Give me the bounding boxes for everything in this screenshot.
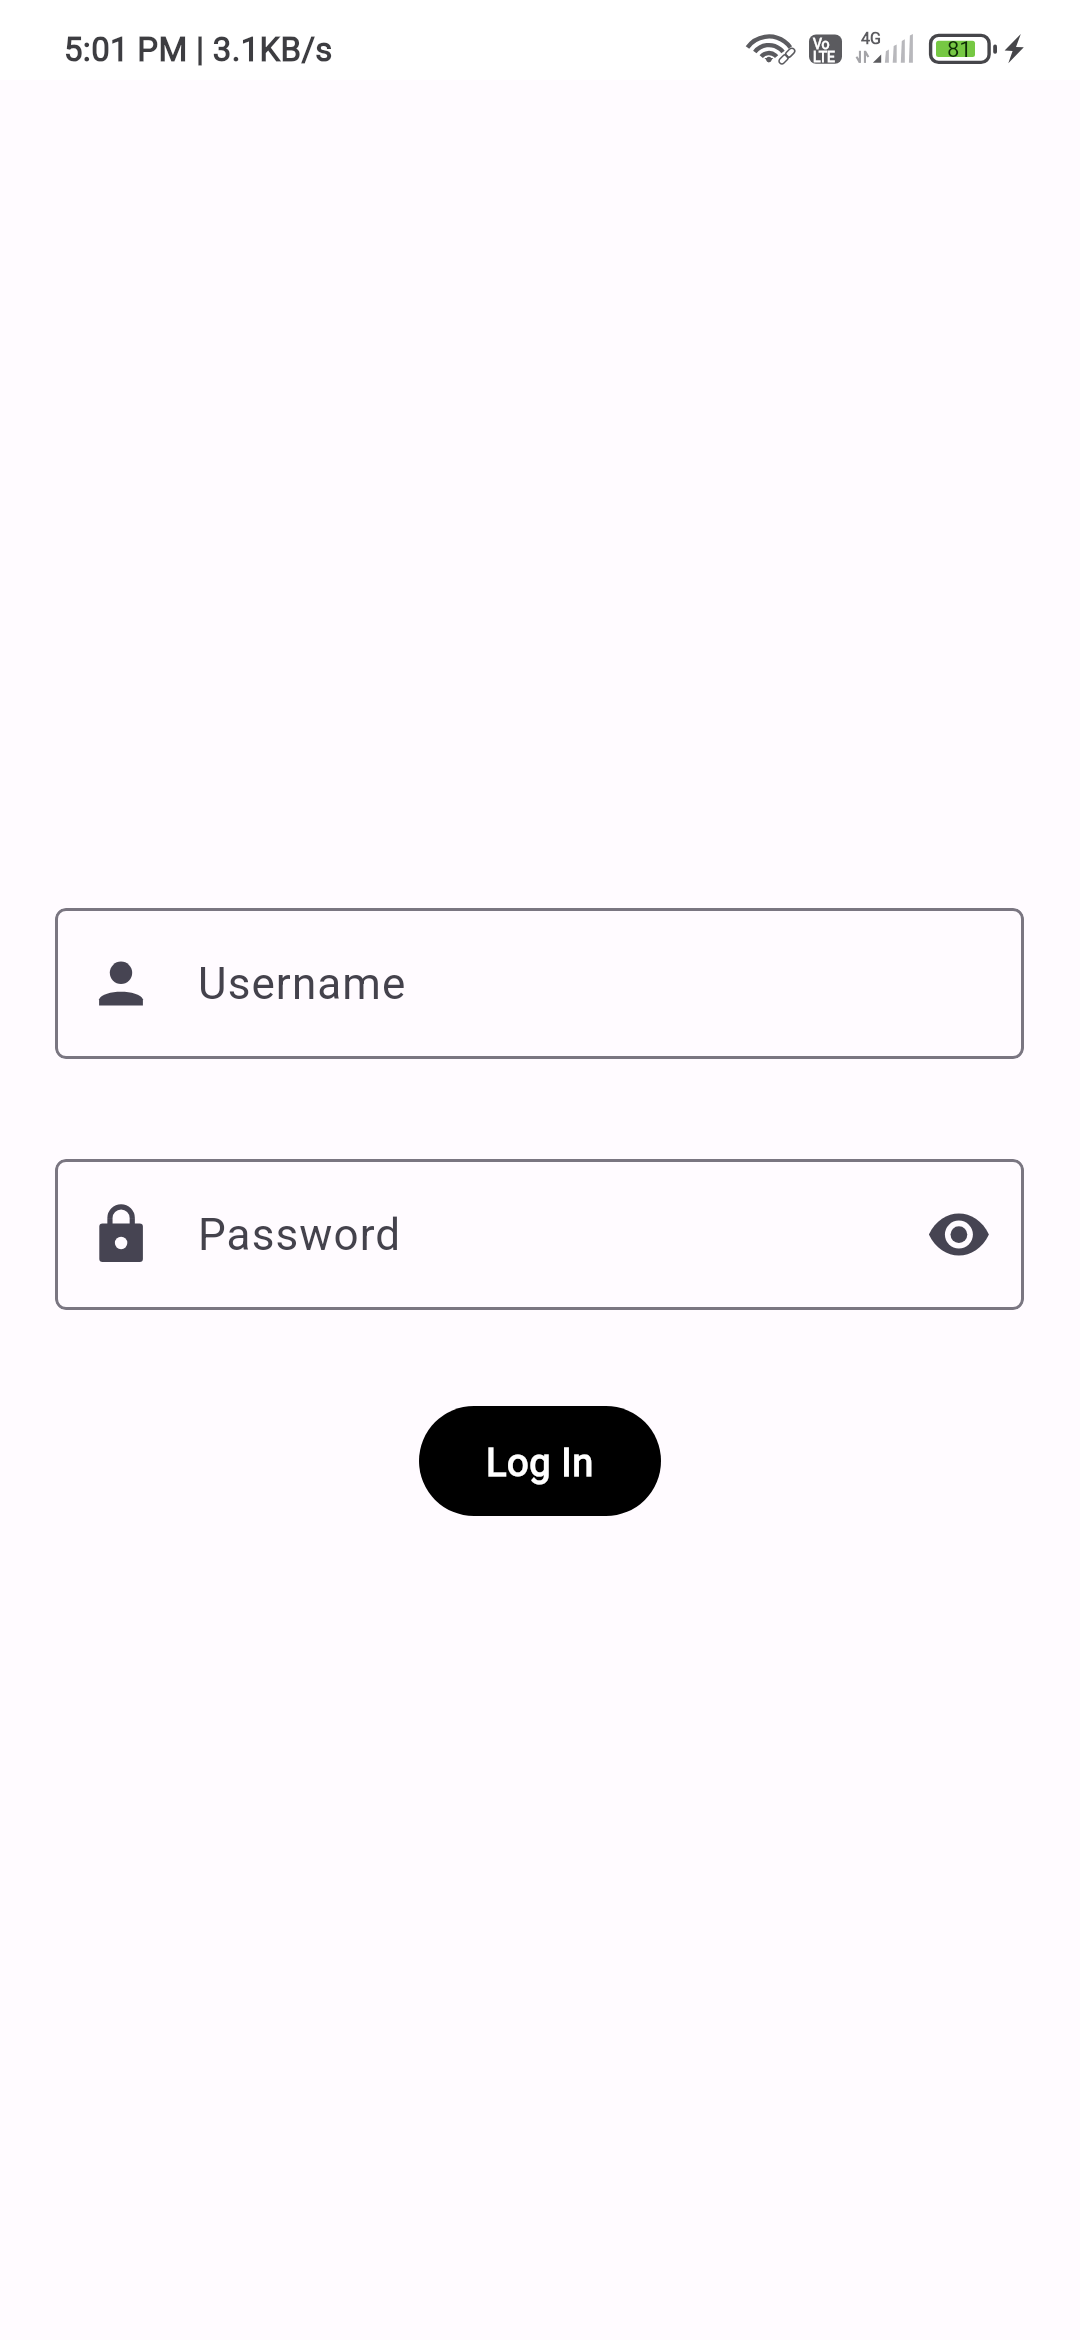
- staticText: Username: [198, 958, 407, 1010]
- button[interactable]: Show password: [924, 1200, 994, 1270]
- staticText: Log In: [486, 1441, 594, 1486]
- staticText: Password: [198, 1209, 402, 1261]
- staticText: 4G: [861, 29, 881, 48]
- staticText: 81: [947, 37, 972, 63]
- staticText: 5:01 PM | 3.1KB/s: [64, 30, 333, 69]
- button[interactable]: Username: [55, 908, 1024, 1059]
- button[interactable]: Password: [55, 1159, 1024, 1310]
- button[interactable]: Log In: [419, 1406, 661, 1516]
- staticText: Vo: [813, 36, 830, 52]
- staticText: LTE: [813, 49, 835, 65]
